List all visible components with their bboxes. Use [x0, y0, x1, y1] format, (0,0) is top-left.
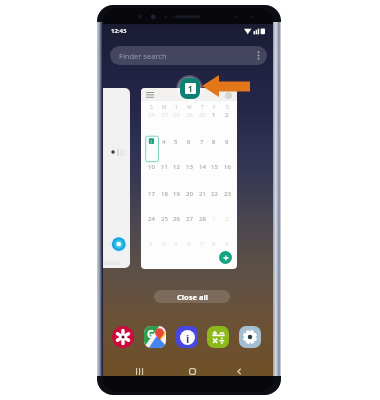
staticText: 8 [212, 240, 216, 248]
staticText: S [226, 104, 229, 111]
staticText: 4 [162, 240, 166, 248]
staticText: 19 [173, 190, 180, 198]
button[interactable]: Info [176, 326, 198, 348]
staticText: T [175, 104, 178, 111]
staticText: 27 [161, 111, 168, 119]
staticText: 9 [225, 138, 229, 146]
button[interactable]: Home [182, 365, 202, 377]
button[interactable]: Back [229, 365, 249, 377]
button[interactable]: Close all [154, 290, 230, 303]
staticText: 28 [173, 111, 180, 119]
staticText: 5 [174, 138, 178, 146]
staticText: 27 [186, 215, 193, 223]
staticText: 7 [200, 240, 204, 248]
staticText: 2 [225, 111, 229, 119]
staticText: 15 [211, 163, 218, 171]
button[interactable]: Recents [129, 365, 149, 377]
staticText: 24 [148, 215, 155, 223]
staticText: 26 [148, 111, 155, 119]
staticText: 6 [187, 138, 191, 146]
staticText: 10 [148, 163, 155, 171]
staticText: G [147, 327, 155, 341]
button[interactable] [103, 88, 130, 268]
staticText: i [186, 331, 190, 345]
staticText: 6 [187, 240, 191, 248]
staticText: 9 [225, 240, 229, 248]
staticText: 5 [174, 240, 178, 248]
staticText: 20 [186, 190, 193, 198]
staticText: 23 [224, 190, 231, 198]
staticText: 2 [225, 215, 229, 223]
staticText: F [213, 104, 216, 111]
staticText: W [187, 104, 192, 111]
staticText: 3 [149, 138, 153, 146]
staticText: M [162, 104, 167, 111]
staticText: 26 [173, 215, 180, 223]
staticText: 7 [200, 138, 204, 146]
button[interactable]: S [141, 88, 237, 269]
button[interactable]: Photos [112, 326, 134, 348]
staticText: 12:43 [111, 27, 127, 35]
staticText: 22 [211, 190, 218, 198]
staticText: 3 [149, 240, 153, 248]
staticText: 1 [212, 111, 216, 119]
button[interactable]: Settings [239, 326, 261, 348]
staticText: 21 [199, 190, 206, 198]
staticText: Finder search [119, 51, 167, 61]
staticText: 16 [224, 163, 231, 171]
staticText: 13 [186, 163, 193, 171]
staticText: Close all [177, 292, 208, 302]
staticText: 25 [161, 215, 168, 223]
staticText: 30 [199, 111, 206, 119]
staticText: 29 [186, 111, 193, 119]
button[interactable]: Calendar app [180, 78, 200, 99]
other: Pointer arrow [202, 75, 250, 97]
staticText: 1 [188, 83, 193, 94]
button[interactable]: Calculator [207, 326, 229, 348]
staticText: 18 [161, 190, 168, 198]
staticText: 12 [173, 163, 180, 171]
button[interactable]: Add event [219, 251, 232, 264]
staticText: 8 [212, 138, 216, 146]
staticText: T [201, 104, 204, 111]
staticText: S [150, 104, 153, 111]
staticText: 28 [199, 215, 206, 223]
button[interactable]: Maps [144, 326, 166, 348]
staticText: 14 [199, 163, 206, 171]
staticText: 11 [161, 163, 168, 171]
staticText: 1 [212, 215, 216, 223]
staticText: 4 [162, 138, 166, 146]
button[interactable]: Finder search [110, 46, 267, 65]
staticText: 17 [148, 190, 155, 198]
